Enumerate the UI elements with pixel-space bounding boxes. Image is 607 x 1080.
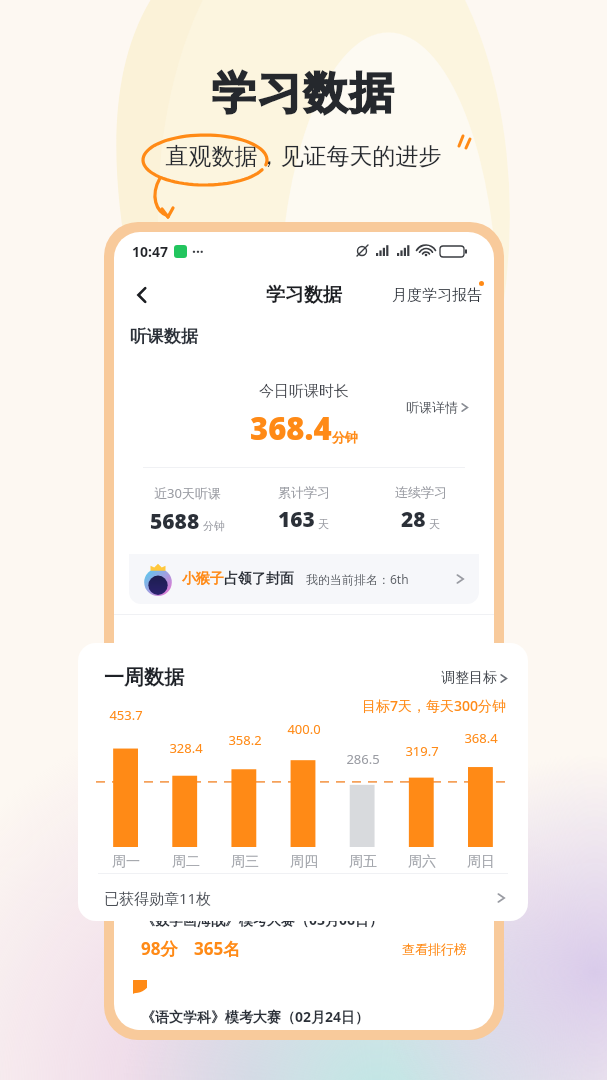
staticText: 319.7 xyxy=(405,742,439,760)
staticText: 6th xyxy=(390,571,409,587)
staticText: 分钟 xyxy=(332,429,358,445)
staticText: 调整目标 xyxy=(441,669,497,687)
staticText: 月度学习报告 xyxy=(392,286,482,305)
staticText: 天 xyxy=(318,517,329,531)
staticText: 连续学习 xyxy=(395,484,447,500)
staticText: 学习数据 xyxy=(266,283,342,307)
staticText: 天 xyxy=(429,517,440,531)
button[interactable]: 听课详情 xyxy=(406,399,469,415)
staticText: 听课数据 xyxy=(130,326,198,347)
staticText: 453.7 xyxy=(109,706,143,724)
staticText: 周日 xyxy=(467,853,495,871)
staticText: 368.4 xyxy=(464,729,498,747)
staticText: 周一 xyxy=(112,853,140,871)
staticText: 近30天听课 xyxy=(154,484,221,502)
button[interactable]: Back xyxy=(122,275,162,315)
staticText: 周三 xyxy=(231,853,259,871)
button[interactable]: 《语文学科》模考大赛（02月24日） xyxy=(129,978,479,1030)
button[interactable]: 调整目标 xyxy=(441,669,508,687)
staticText: 查看排行榜 xyxy=(402,941,467,957)
button[interactable]: 已获得勋章11枚 xyxy=(104,874,506,921)
staticText: 听课详情 xyxy=(406,399,458,415)
staticText: 周五 xyxy=(349,853,377,871)
staticText: 累计学习 xyxy=(278,484,330,500)
staticText: 286.5 xyxy=(346,750,380,768)
staticText: 400.0 xyxy=(287,720,321,738)
staticText: 365名 xyxy=(194,937,241,960)
staticText: 周四 xyxy=(290,853,318,871)
staticText: 368.4 xyxy=(250,407,332,449)
staticText: 98分 xyxy=(141,937,178,960)
button[interactable]: 《数学画海战》模考大赛（03月06日） xyxy=(141,910,467,960)
staticText: 163 xyxy=(278,505,315,534)
staticText: 直观数据，见证每天的进步 xyxy=(0,142,607,171)
staticText: 5688 xyxy=(150,507,200,536)
staticText: 一周数据 xyxy=(104,665,184,690)
staticText: 我的当前排名： xyxy=(306,572,390,587)
staticText: 10:47 xyxy=(132,242,168,261)
staticText: 周六 xyxy=(408,853,436,871)
staticText: 分钟 xyxy=(203,519,225,533)
staticText: 周二 xyxy=(172,853,200,871)
staticText: 《数学画海战》模考大赛（03月06日） xyxy=(141,910,384,929)
staticText: 占领了封面 xyxy=(224,570,294,588)
staticText: 小猴子 xyxy=(182,570,224,588)
staticText: 学习数据 xyxy=(0,66,607,121)
staticText: 358.2 xyxy=(228,731,262,749)
button[interactable]: 月度学习报告 xyxy=(392,286,482,305)
staticText: 今日听课时长 xyxy=(259,382,349,401)
staticText: 328.4 xyxy=(169,739,203,757)
button[interactable]: 小猴子 xyxy=(143,563,465,595)
staticText: 《语文学科》模考大赛（02月24日） xyxy=(141,1007,370,1026)
staticText: ··· xyxy=(192,242,204,261)
staticText: 28 xyxy=(401,505,426,534)
staticText: 已获得勋章11枚 xyxy=(104,888,212,908)
staticText: 目标7天，每天300分钟 xyxy=(78,696,506,715)
